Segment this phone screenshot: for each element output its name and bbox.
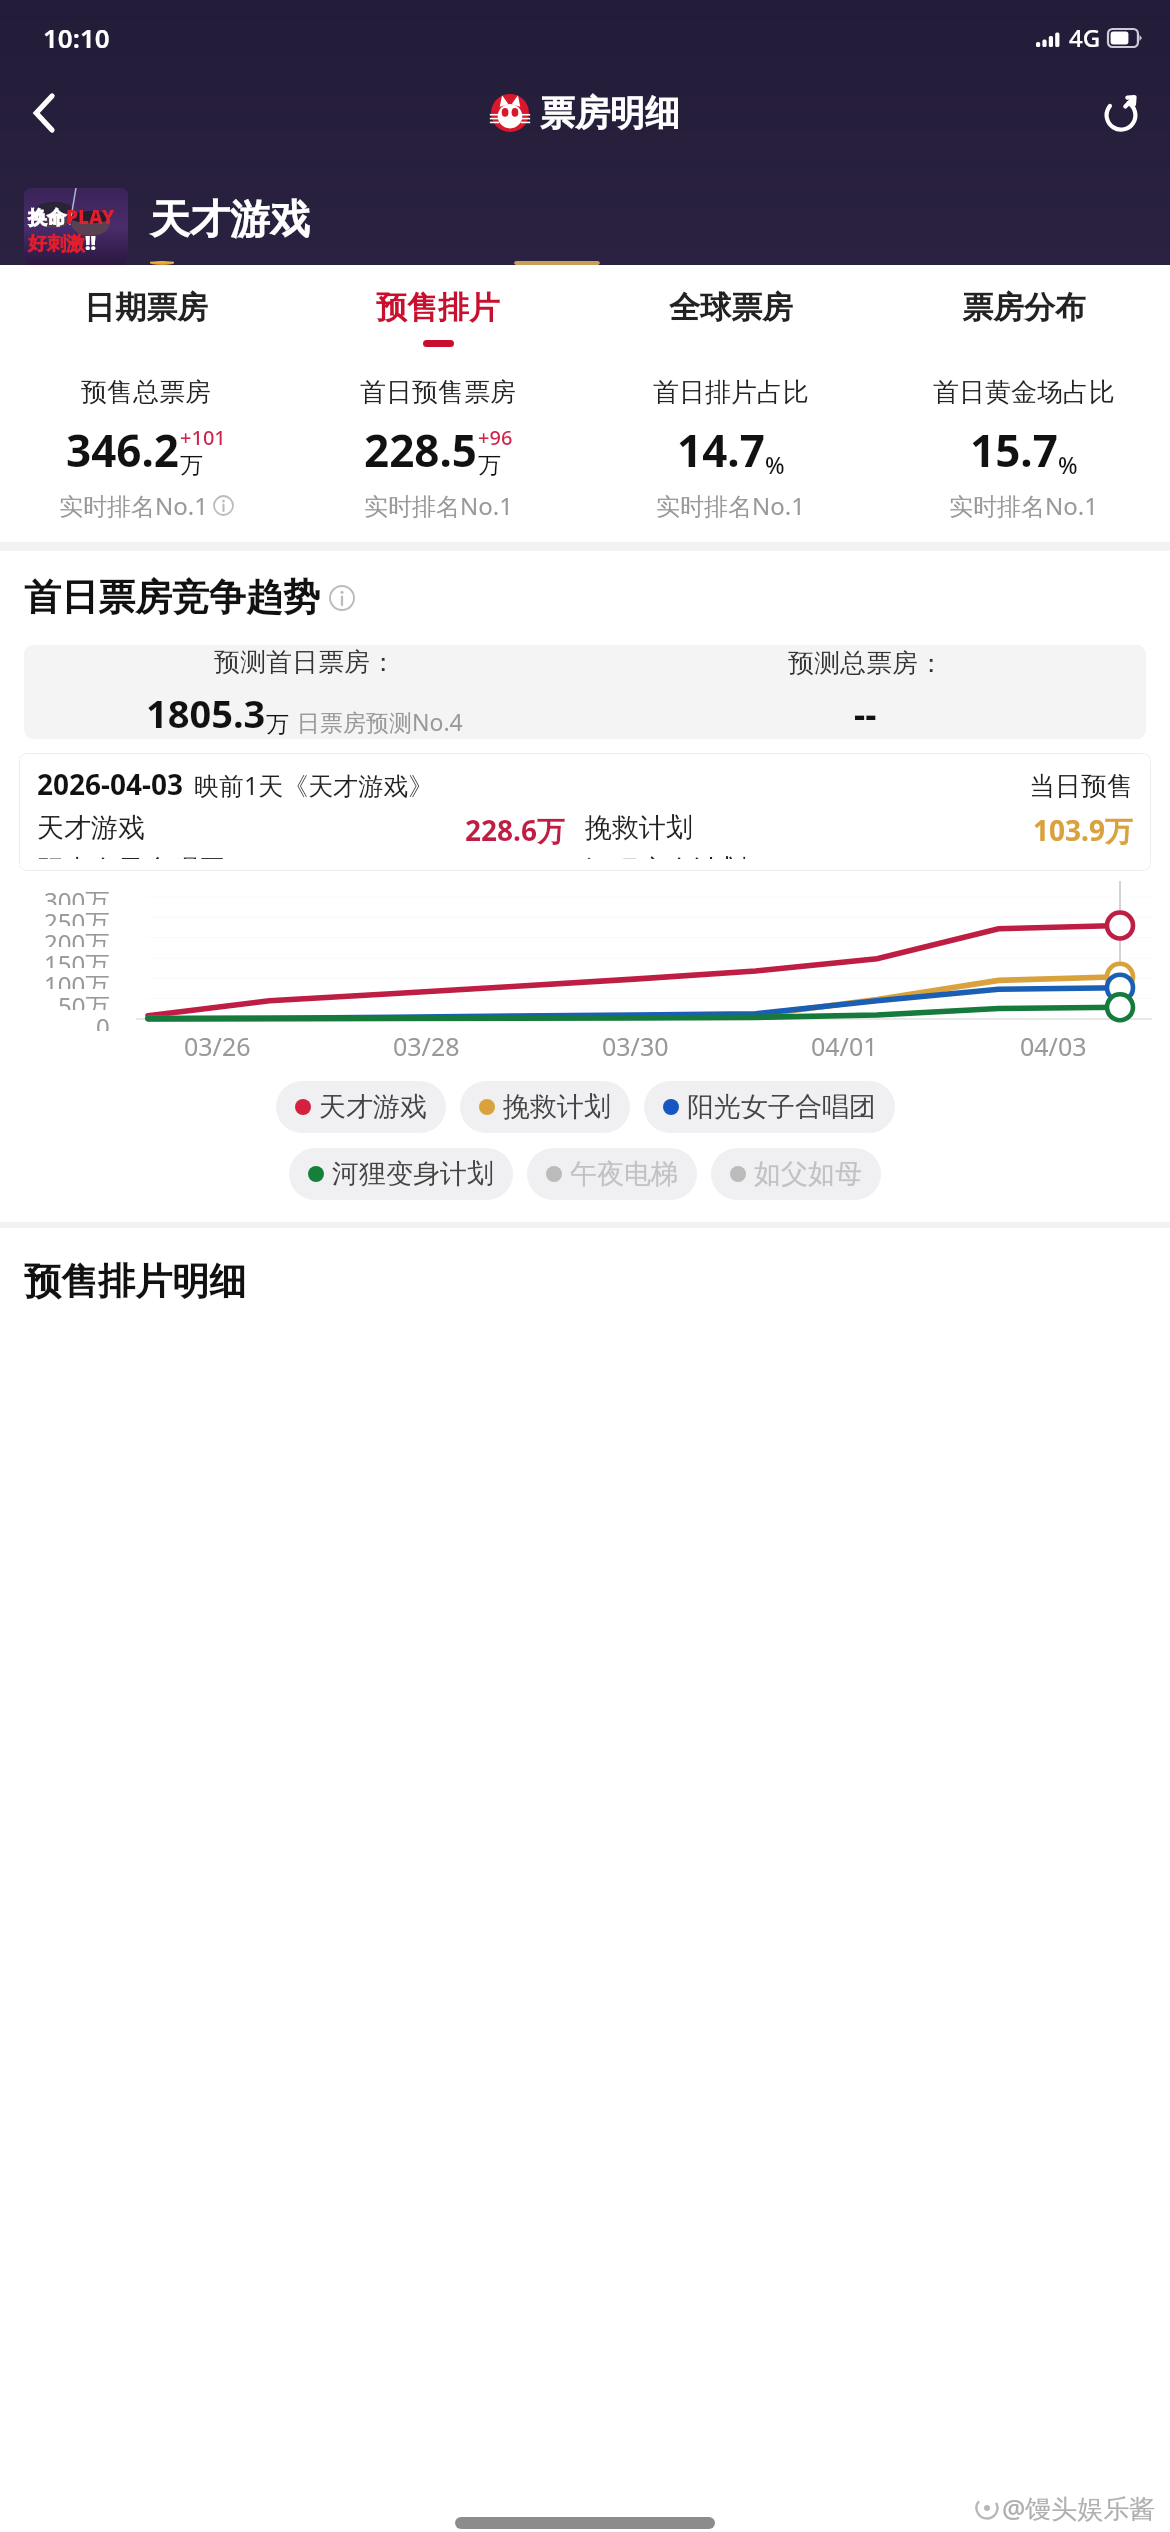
- button[interactable]: Back: [16, 84, 74, 142]
- staticText: 实时排名No.1: [949, 489, 1098, 522]
- button[interactable]: 说明: [329, 585, 355, 611]
- staticText: 实时排名No.1: [656, 489, 805, 522]
- staticText: 首日排片占比: [653, 376, 809, 409]
- staticText: %: [765, 449, 785, 480]
- staticText: 如父如母: [754, 1157, 862, 1191]
- staticText: PLAY: [66, 204, 115, 230]
- staticText: 预测首日票房：: [214, 646, 396, 679]
- staticText: 首日票房竞争趋势: [24, 574, 320, 621]
- staticText: +101: [180, 424, 226, 451]
- staticText: 天才游戏: [37, 811, 145, 845]
- staticText: 0: [96, 1010, 110, 1031]
- button[interactable]: Share: [1092, 84, 1150, 142]
- staticText: 映前1天《天才游戏》: [194, 768, 434, 802]
- staticText: 300万: [44, 884, 110, 905]
- staticText: 阳光女子合唱团: [687, 1090, 876, 1124]
- staticText: 200万: [44, 926, 110, 947]
- staticText: 实时排名No.1: [59, 489, 208, 522]
- staticText: 万: [180, 451, 203, 480]
- button[interactable]: 首日预售票房: [292, 376, 584, 522]
- button[interactable]: 挽救计划: [460, 1081, 630, 1133]
- staticText: 日票房预测No.4: [297, 706, 463, 737]
- staticText: @馒头娱乐酱: [1002, 2490, 1156, 2526]
- staticText: 103.9万: [1033, 811, 1133, 849]
- staticText: 预测总票房：: [788, 647, 944, 680]
- staticText: 预售排片明细: [24, 1258, 246, 1305]
- staticText: 03/28: [393, 1029, 460, 1063]
- staticText: 1805.3: [146, 687, 266, 739]
- button[interactable]: 阳光女子合唱团: [644, 1081, 895, 1133]
- staticText: 当日预售: [1029, 770, 1133, 803]
- staticText: 全球票房: [669, 288, 793, 327]
- staticText: 15.7: [970, 420, 1058, 480]
- staticText: 228.5: [364, 420, 478, 480]
- button[interactable]: 首日黄金场占比: [877, 376, 1170, 522]
- staticText: 好刺激: [28, 232, 85, 256]
- staticText: 2026-04-03: [37, 765, 184, 803]
- button[interactable]: 首日排片占比: [584, 376, 877, 522]
- staticText: 首日黄金场占比: [933, 376, 1115, 409]
- staticText: 预售排片: [376, 288, 500, 327]
- staticText: 50万: [58, 989, 110, 1010]
- staticText: 阳光女子合唱团: [37, 853, 226, 859]
- button[interactable]: 午夜电梯: [527, 1148, 697, 1200]
- staticText: 03/26: [184, 1029, 251, 1063]
- staticText: 228.6万: [465, 811, 565, 849]
- staticText: 4G: [1069, 21, 1101, 54]
- staticText: 首日预售票房: [360, 376, 516, 409]
- staticText: 14.7: [677, 420, 765, 480]
- staticText: !!: [85, 230, 97, 256]
- staticText: 河狸变身计划: [332, 1157, 494, 1191]
- staticText: 票房分布: [962, 288, 1086, 327]
- staticText: 午夜电梯: [570, 1157, 678, 1191]
- staticText: 万: [478, 451, 501, 480]
- staticText: 天才游戏: [150, 194, 310, 244]
- button[interactable]: 预售排片: [292, 265, 584, 360]
- staticText: 预售总票房: [81, 376, 211, 409]
- staticText: 10:10: [43, 20, 110, 55]
- staticText: 挽救计划: [503, 1090, 611, 1124]
- button[interactable]: 天才游戏: [276, 1081, 446, 1133]
- button[interactable]: 预测首日票房：: [24, 645, 1146, 739]
- staticText: 04/01: [811, 1029, 878, 1063]
- staticText: --: [854, 690, 877, 738]
- staticText: 河狸变身计划: [585, 853, 747, 859]
- staticText: 票房明细: [540, 91, 680, 135]
- staticText: +96: [478, 424, 513, 451]
- staticText: 250万: [44, 905, 110, 926]
- button[interactable]: 换命: [24, 188, 128, 265]
- staticText: 03/30: [602, 1029, 669, 1063]
- button[interactable]: 票房分布: [877, 265, 1170, 360]
- staticText: 150万: [44, 947, 110, 968]
- button[interactable]: 预售总票房: [0, 376, 292, 522]
- staticText: 换命: [28, 206, 66, 230]
- staticText: 天才游戏: [319, 1090, 427, 1124]
- staticText: 万: [266, 710, 289, 739]
- button[interactable]: 河狸变身计划: [289, 1148, 513, 1200]
- button[interactable]: 全球票房: [584, 265, 877, 360]
- staticText: %: [1058, 449, 1078, 480]
- staticText: 346.2: [66, 420, 180, 480]
- staticText: 日期票房: [84, 288, 208, 327]
- staticText: 100万: [44, 968, 110, 989]
- staticText: 实时排名No.1: [364, 489, 513, 522]
- button[interactable]: 日期票房: [0, 265, 292, 360]
- staticText: 04/03: [1020, 1029, 1087, 1063]
- staticText: 挽救计划: [585, 811, 693, 845]
- button[interactable]: 如父如母: [711, 1148, 881, 1200]
